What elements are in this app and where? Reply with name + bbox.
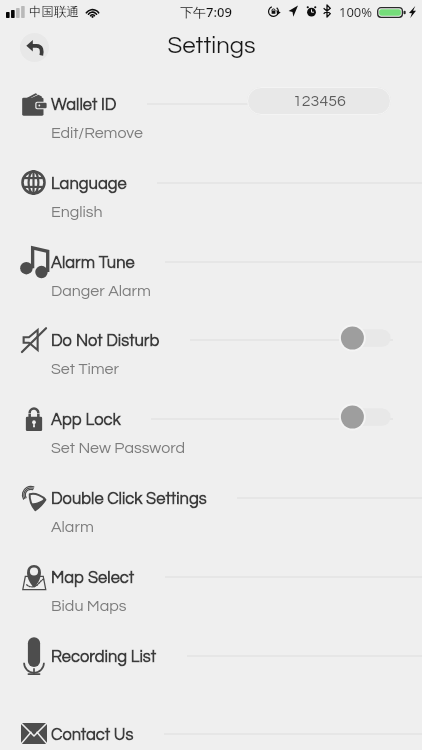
button[interactable]: Wallet ID bbox=[0, 84, 422, 163]
staticText: Bidu Maps bbox=[51, 598, 127, 614]
staticText: 下午7:09 bbox=[180, 3, 232, 21]
staticText: Language bbox=[51, 175, 127, 192]
staticText: Double Click Settings bbox=[51, 490, 207, 507]
staticText: 100% bbox=[339, 3, 373, 21]
staticText: Set New Password bbox=[51, 440, 185, 456]
staticText: Alarm bbox=[51, 519, 94, 535]
staticText: Wallet ID bbox=[51, 96, 117, 113]
staticText: Alarm Tune bbox=[51, 254, 135, 271]
staticText: Set Timer bbox=[51, 361, 120, 377]
staticText: Settings bbox=[167, 33, 256, 58]
staticText: Map Select bbox=[51, 569, 135, 586]
staticText: English bbox=[51, 204, 103, 220]
button[interactable]: Toggle bbox=[337, 322, 393, 354]
staticText: 123456 bbox=[293, 93, 346, 109]
button[interactable]: Contact Us bbox=[0, 714, 422, 750]
staticText: Do Not Disturb bbox=[51, 332, 160, 349]
button[interactable]: Language bbox=[0, 163, 422, 242]
staticText: App Lock bbox=[51, 411, 121, 428]
staticText: Danger Alarm bbox=[51, 283, 151, 299]
staticText: Edit/Remove bbox=[51, 125, 143, 141]
button[interactable]: Do Not Disturb bbox=[0, 320, 422, 399]
staticText: Recording List bbox=[51, 648, 157, 665]
button[interactable]: Recording List bbox=[0, 636, 422, 715]
staticText: Contact Us bbox=[51, 726, 134, 743]
button[interactable]: Toggle bbox=[337, 401, 393, 433]
button[interactable]: Back bbox=[20, 33, 49, 62]
button[interactable]: Double Click Settings bbox=[0, 478, 422, 557]
button[interactable]: 123456 bbox=[247, 87, 391, 115]
staticText: 中国联通 bbox=[29, 4, 79, 20]
button[interactable]: Alarm Tune bbox=[0, 242, 422, 321]
button[interactable]: Map Select bbox=[0, 557, 422, 636]
button[interactable]: App Lock bbox=[0, 399, 422, 478]
